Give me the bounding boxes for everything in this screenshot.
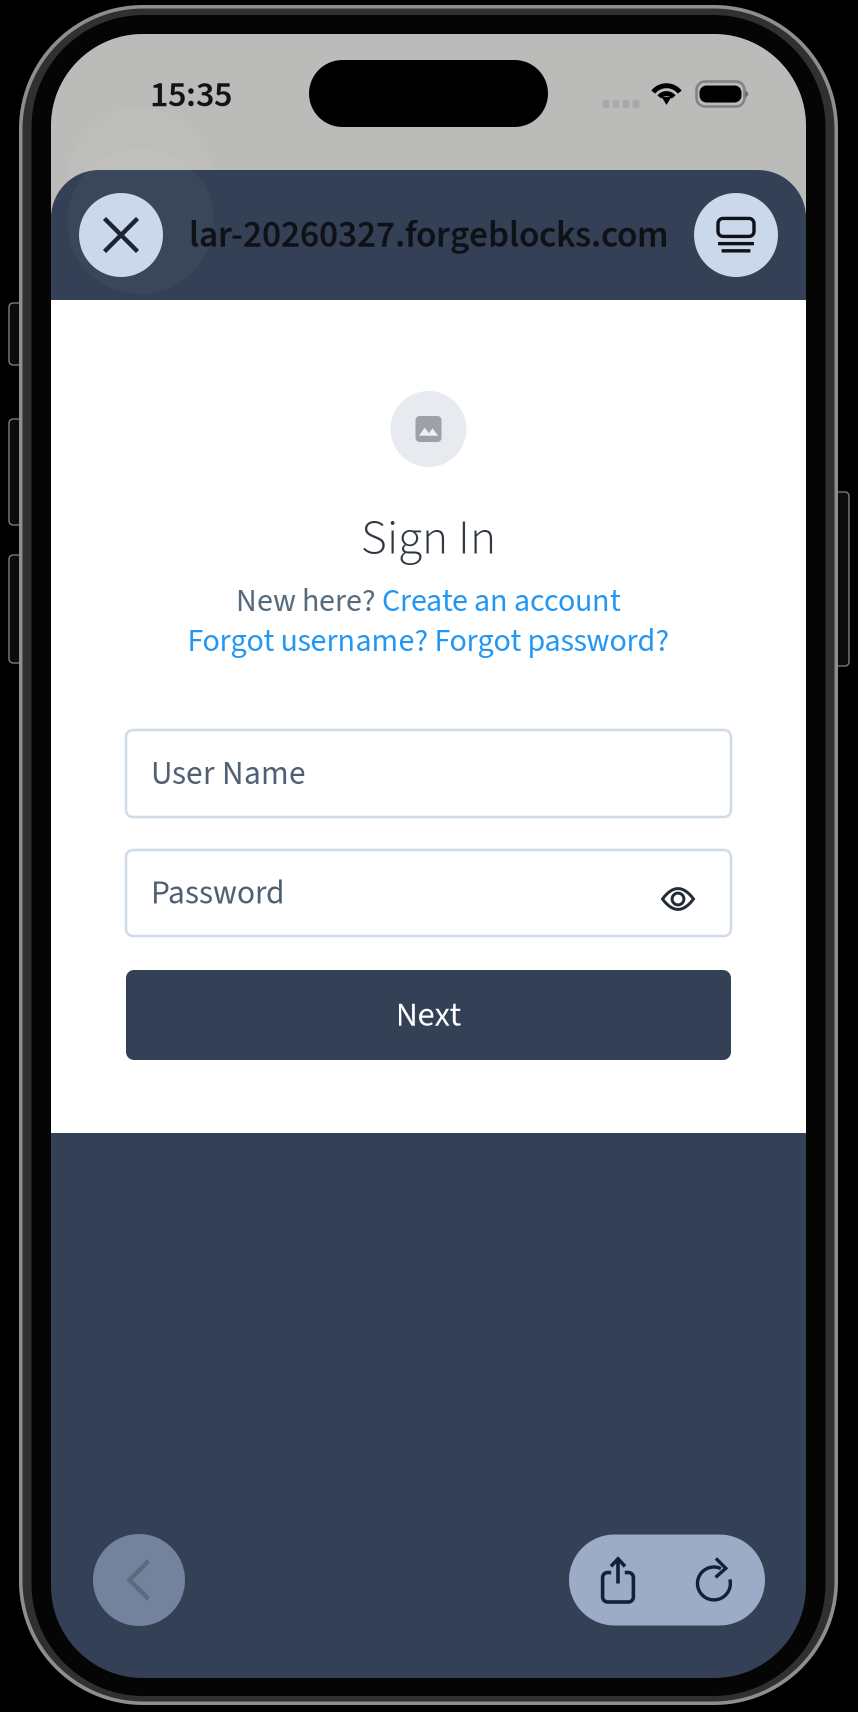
staticText: Sign In	[361, 503, 496, 573]
staticText: Password	[151, 869, 285, 917]
button[interactable]: Create an account	[382, 578, 621, 624]
button[interactable]: Close	[79, 193, 163, 277]
button[interactable]: Reload	[667, 1534, 765, 1625]
staticText: Forgot username?	[187, 618, 428, 664]
button[interactable]: Next	[126, 970, 731, 1060]
button[interactable]: Share	[569, 1534, 667, 1625]
staticText: User Name	[151, 750, 306, 797]
button[interactable]: Forgot username?	[187, 618, 428, 664]
staticText: Create an account	[382, 578, 621, 624]
staticText: 15:35	[150, 69, 232, 121]
button[interactable]: Back	[93, 1534, 185, 1626]
button[interactable]: Forgot password?	[434, 618, 669, 664]
staticText: Forgot password?	[434, 618, 669, 664]
staticText: lar-20260327.forgeblocks.com	[189, 208, 668, 262]
button[interactable]: Reader view	[694, 193, 778, 277]
button[interactable]: Show password	[647, 862, 709, 924]
staticText: New here?	[236, 578, 376, 624]
staticText: Next	[395, 990, 461, 1040]
